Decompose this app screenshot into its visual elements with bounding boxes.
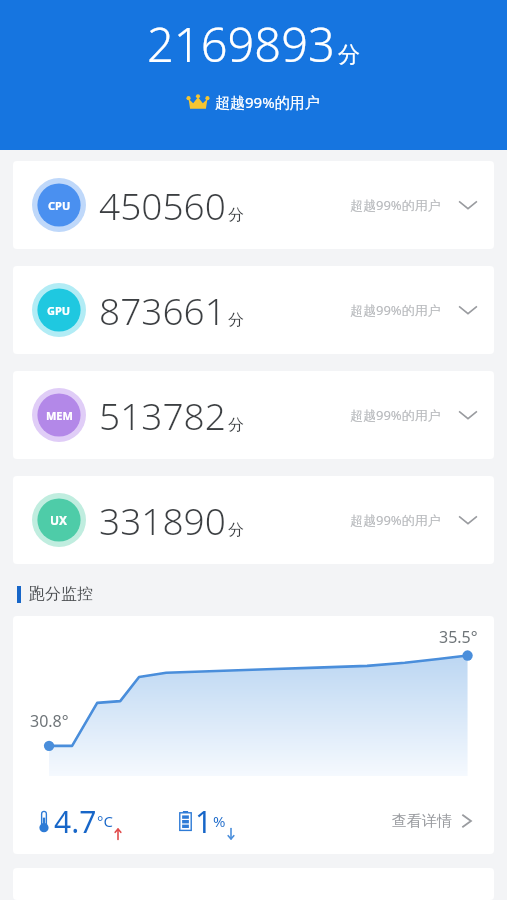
staticText: 513782 <box>99 390 226 440</box>
button[interactable]: MEM <box>13 371 494 459</box>
staticText: °C <box>97 811 113 831</box>
staticText: 分 <box>228 415 244 435</box>
staticText: 超越99%的用户 <box>350 406 441 424</box>
staticText: 2169893 <box>147 12 335 76</box>
staticText: 分 <box>338 41 360 69</box>
staticText: 873661 <box>99 285 226 335</box>
staticText: 分 <box>228 310 244 330</box>
staticText: 跑分监控 <box>29 584 93 604</box>
staticText: 分 <box>228 520 244 540</box>
staticText: 分 <box>228 205 244 225</box>
staticText: 450560 <box>99 180 226 230</box>
staticText: 4.7 <box>54 801 97 842</box>
staticText: 查看详情 <box>392 812 452 831</box>
staticText: % <box>213 811 226 831</box>
staticText: 超越99%的用户 <box>350 511 441 529</box>
staticText: 超越99%的用户 <box>350 196 441 214</box>
staticText: 331890 <box>99 495 226 545</box>
button[interactable]: GPU <box>13 266 494 354</box>
button[interactable]: UX <box>13 476 494 564</box>
staticText: 超越99%的用户 <box>350 301 441 319</box>
button[interactable]: CPU <box>13 161 494 249</box>
staticText: CPU <box>48 198 71 213</box>
staticText: 超越99%的用户 <box>215 92 320 112</box>
staticText: UX <box>50 512 68 528</box>
staticText: MEM <box>46 408 73 423</box>
button[interactable]: 查看详情 <box>384 801 484 841</box>
staticText: GPU <box>47 303 71 318</box>
staticText: 30.8° <box>30 710 69 732</box>
staticText: 1 <box>195 801 213 842</box>
staticText: 35.5° <box>439 626 478 648</box>
